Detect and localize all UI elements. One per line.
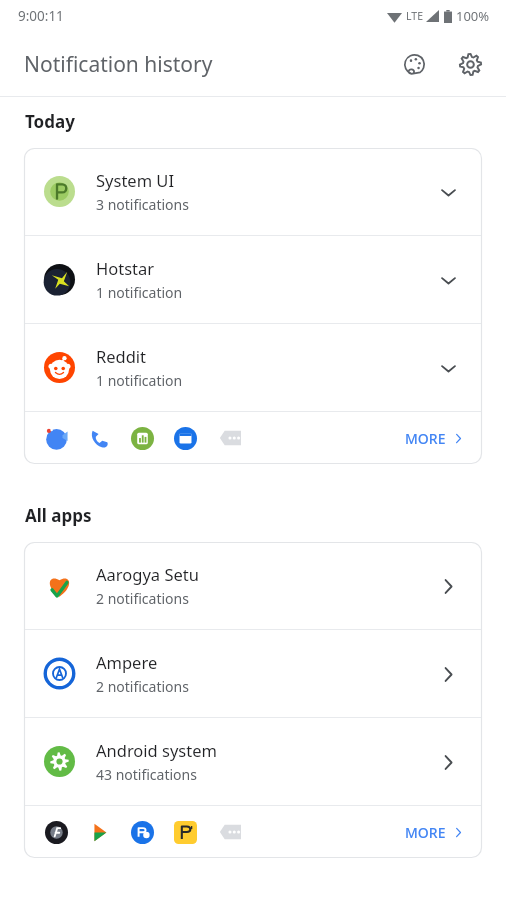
button[interactable]: Settings <box>448 42 492 86</box>
staticText: 43 notifications <box>96 765 197 784</box>
button[interactable]: MORE <box>391 421 478 456</box>
staticText: 2 notifications <box>96 589 189 608</box>
button[interactable]: System UI <box>24 148 482 235</box>
staticText: Reddit <box>96 345 147 367</box>
staticText: 2 notifications <box>96 677 189 696</box>
staticText: MORE <box>405 429 446 448</box>
staticText: System UI <box>96 169 175 191</box>
button[interactable]: MORE <box>391 815 478 850</box>
button[interactable]: Hotstar <box>24 236 482 323</box>
staticText: LTE <box>406 9 423 23</box>
staticText: 1 notification <box>96 283 183 302</box>
button[interactable]: Android system <box>24 718 482 805</box>
button[interactable]: Aarogya Setu <box>24 542 482 629</box>
staticText: 9:00:11 <box>18 7 64 25</box>
staticText: 100% <box>456 7 490 25</box>
staticText: 1 notification <box>96 371 183 390</box>
staticText: Notification history <box>24 50 213 79</box>
staticText: Ampere <box>96 651 158 673</box>
staticText: Hotstar <box>96 257 155 279</box>
button[interactable]: Reddit <box>24 324 482 411</box>
staticText: Today <box>25 110 75 133</box>
staticText: Aarogya Setu <box>96 563 199 585</box>
staticText: 3 notifications <box>96 195 189 214</box>
staticText: Android system <box>96 739 217 761</box>
staticText: All apps <box>25 504 92 527</box>
button[interactable]: Ampere <box>24 630 482 717</box>
button[interactable]: Theme <box>392 42 436 86</box>
staticText: MORE <box>405 823 446 842</box>
